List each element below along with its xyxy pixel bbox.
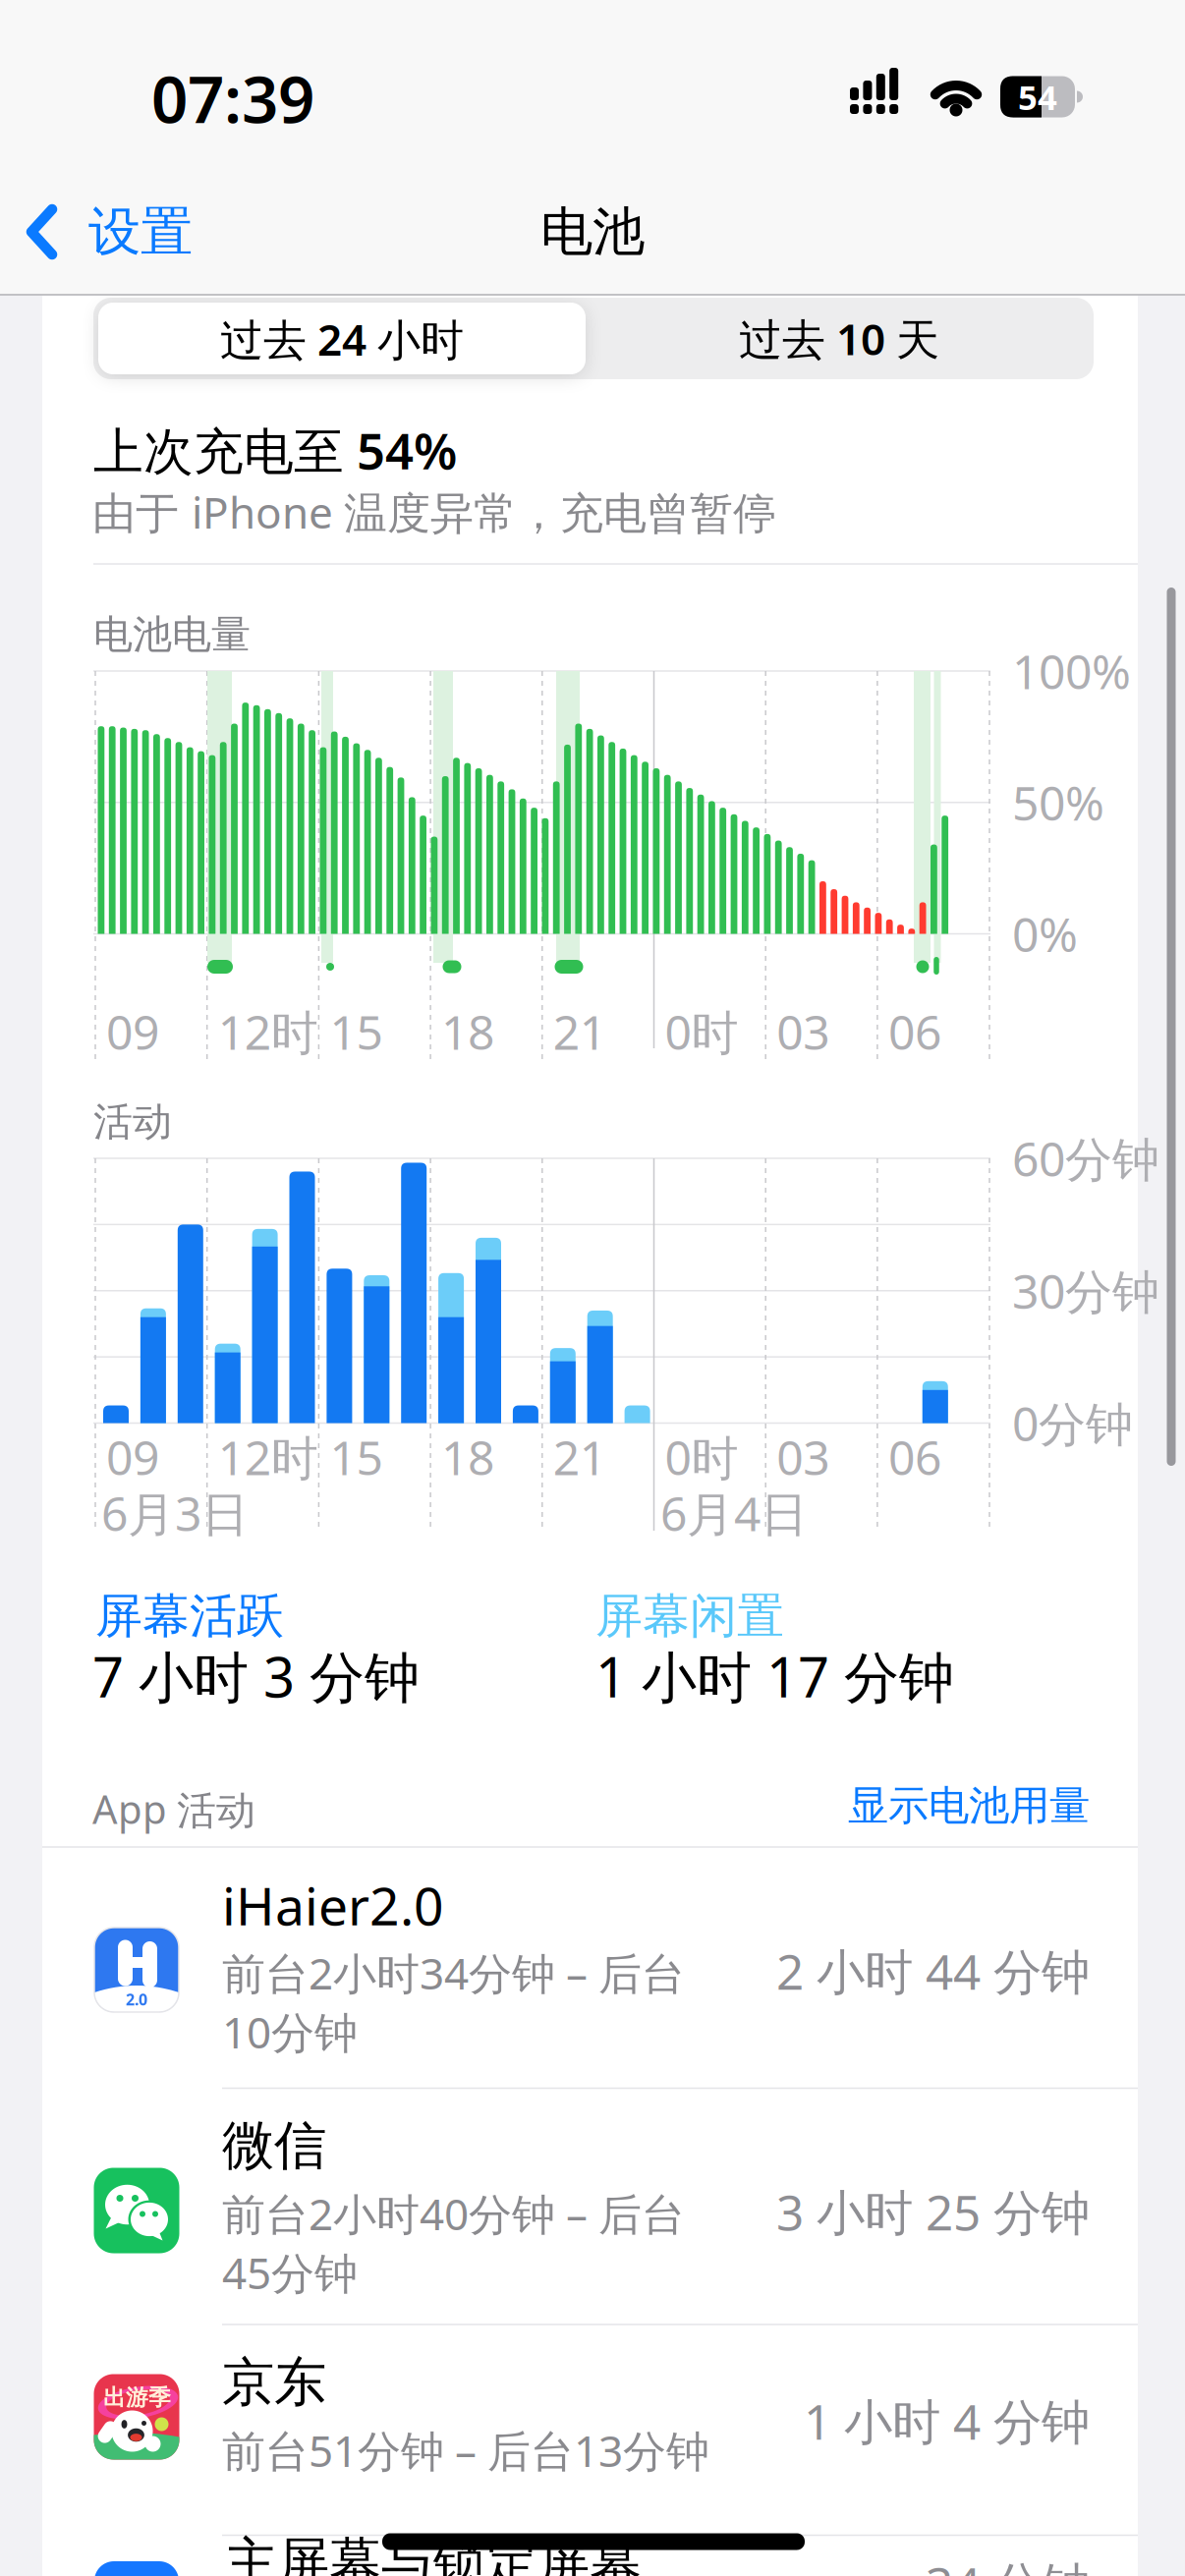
staticText: 0时 [665, 1000, 738, 1063]
staticText: 12时 [218, 1000, 318, 1063]
staticText: 03 [776, 1426, 830, 1488]
staticText: 主屏幕与锁定屏幕 [225, 2530, 642, 2576]
staticText: 12时 [218, 1426, 318, 1488]
staticText: 显示电池用量 [848, 1781, 1090, 1831]
staticText: 电池电量 [93, 610, 251, 659]
staticText: 出游季 [103, 2384, 171, 2411]
staticText: App 活动 [92, 1782, 255, 1835]
staticText: 0时 [665, 1426, 738, 1488]
staticText: 34 分钟 [926, 2552, 1090, 2576]
staticText: 微信 [222, 2113, 326, 2178]
button[interactable]: 过去 10 天 [593, 301, 1085, 376]
staticText: 过去 10 天 [739, 310, 939, 367]
staticText: 2 小时 44 分钟 [776, 1939, 1090, 2003]
staticText: 54 [1018, 74, 1057, 119]
staticText: 21 [553, 1426, 606, 1488]
staticText: 0% [1012, 902, 1078, 965]
staticText: 2.0 [126, 1989, 147, 2010]
staticText: 60分钟 [1012, 1127, 1159, 1190]
staticText: iHaier2.0 [222, 1870, 444, 1940]
button[interactable]: 主屏幕与锁定屏幕 [42, 2537, 1143, 2576]
staticText: 09 [106, 1000, 159, 1063]
staticText: 屏幕活跃 [95, 1587, 284, 1645]
staticText: 上次充电至 54% [93, 417, 457, 483]
staticText: 1 小时 17 分钟 [595, 1640, 954, 1713]
staticText: 7 小时 3 分钟 [92, 1640, 420, 1713]
staticText: 设置 [88, 200, 193, 264]
button[interactable]: 显示电池用量 [697, 1780, 1090, 1831]
staticText: 屏幕闲置 [595, 1587, 784, 1645]
staticText: 07:39 [151, 56, 314, 141]
staticText: 30分钟 [1012, 1259, 1159, 1322]
staticText: 京东 [222, 2350, 326, 2415]
staticText: 过去 24 小时 [220, 310, 464, 368]
button[interactable]: 设置 [20, 192, 246, 272]
staticText: 18 [441, 1426, 494, 1488]
staticText: 15 [330, 1000, 383, 1063]
staticText: 由于 iPhone 温度异常，充电曾暂停 [92, 483, 776, 541]
button[interactable]: 出游季 [42, 2325, 1143, 2535]
staticText: 活动 [93, 1098, 172, 1146]
staticText: 15 [330, 1426, 383, 1488]
staticText: 06 [888, 1000, 941, 1063]
staticText: 0分钟 [1012, 1392, 1133, 1454]
staticText: 45分钟 [222, 2244, 358, 2301]
staticText: 03 [776, 1000, 830, 1063]
staticText: 6月4日 [660, 1482, 808, 1544]
staticText: 1 小时 4 分钟 [804, 2389, 1090, 2453]
staticText: 6月3日 [101, 1482, 249, 1544]
staticText: 电池 [540, 200, 645, 264]
staticText: 前台51分钟 – 后台13分钟 [222, 2422, 709, 2479]
staticText: 50% [1012, 771, 1104, 834]
button[interactable]: 过去 24 小时 [98, 303, 586, 374]
staticText: 前台2小时40分钟 – 后台 [222, 2185, 685, 2242]
staticText: 10分钟 [222, 2003, 358, 2060]
staticText: 09 [106, 1426, 159, 1488]
staticText: 3 小时 25 分钟 [776, 2179, 1090, 2244]
staticText: 18 [441, 1000, 494, 1063]
button[interactable]: 2.0 [42, 1848, 1143, 2088]
staticText: 100% [1012, 640, 1131, 702]
staticText: 21 [553, 1000, 606, 1063]
button[interactable]: 微信 [42, 2089, 1143, 2324]
staticText: 06 [888, 1426, 941, 1488]
staticText: 前台2小时34分钟 – 后台 [222, 1944, 685, 2001]
